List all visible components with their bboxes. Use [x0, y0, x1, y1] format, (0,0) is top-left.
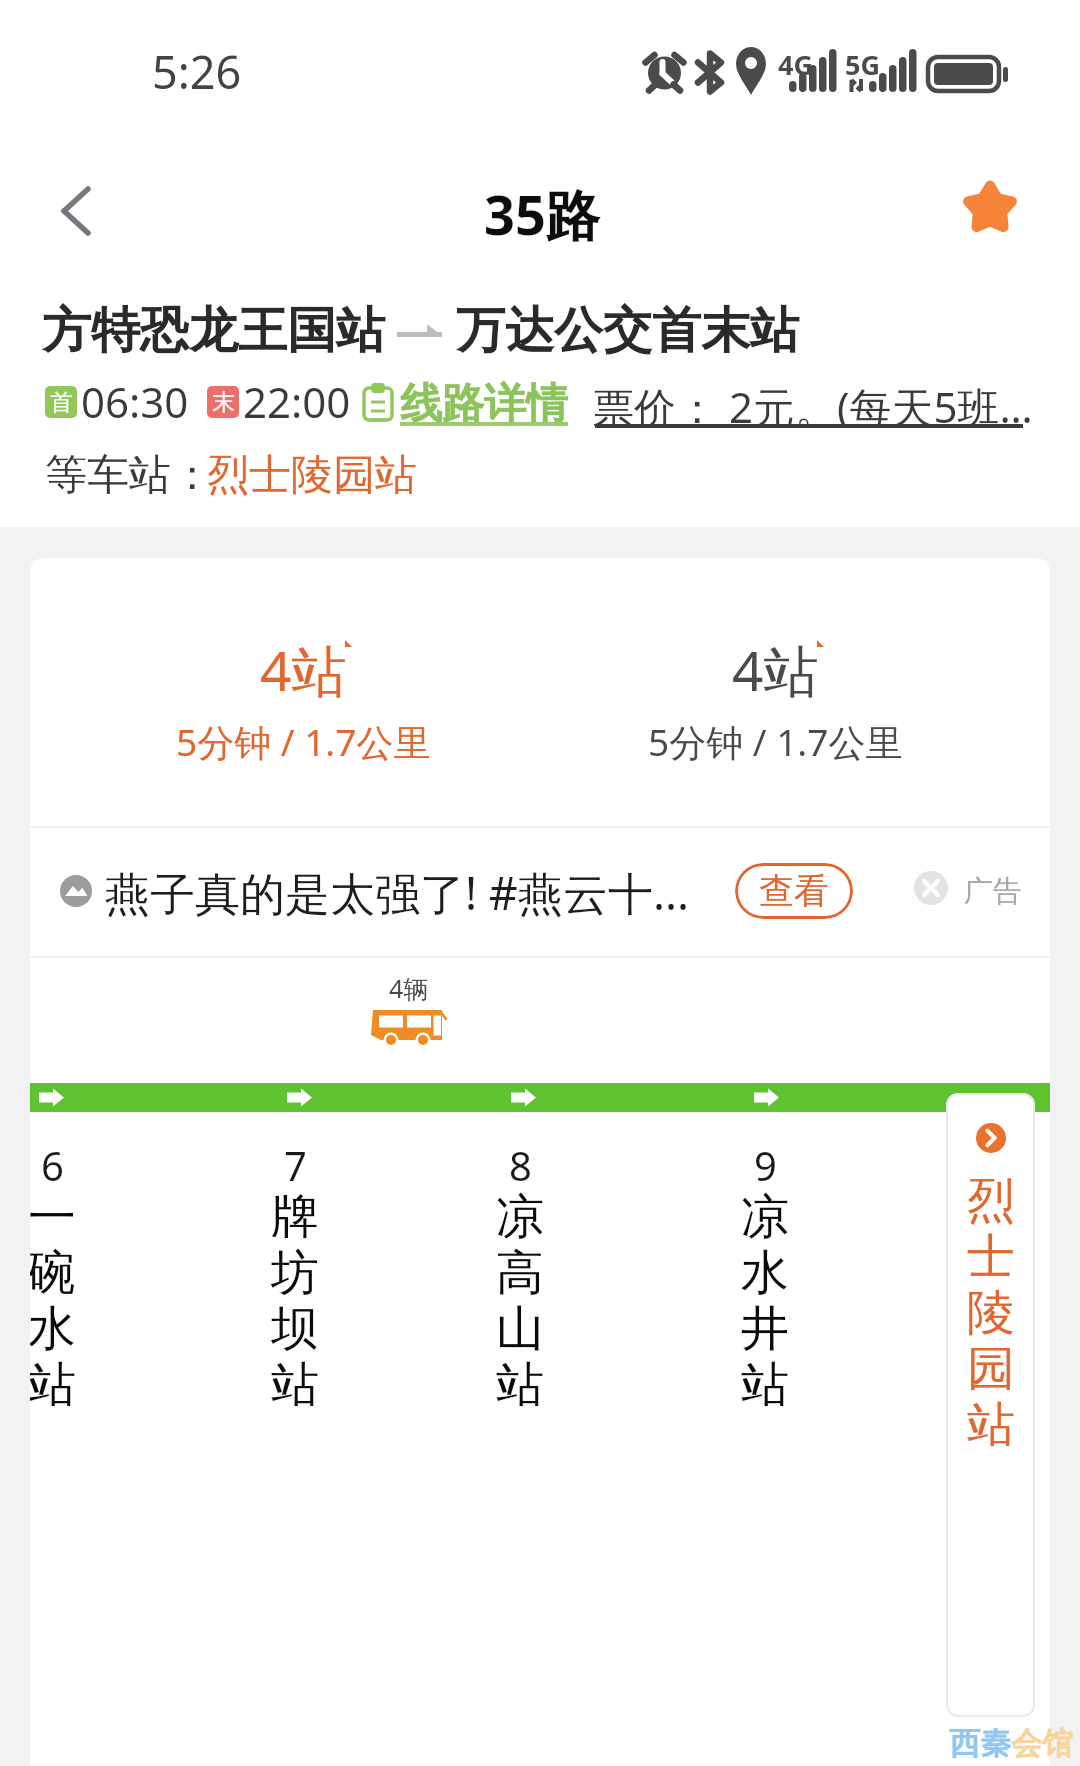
button[interactable]: Back	[36, 171, 116, 251]
staticText: 9	[754, 1138, 777, 1192]
staticText: 4辆	[389, 971, 429, 1005]
staticText: 4G	[778, 46, 813, 83]
staticText: 35路	[484, 177, 600, 251]
staticText: 方特恐龙王国站	[42, 300, 385, 362]
staticText: 燕子真的是太强了! #燕云十...	[105, 862, 690, 923]
staticText: 线路详情	[400, 378, 568, 426]
staticText: 5分钟 / 1.7公里	[648, 716, 903, 767]
staticText: 8	[509, 1138, 532, 1192]
button[interactable]: 7	[240, 1138, 350, 1558]
staticText: 5分钟 / 1.7公里	[176, 716, 431, 767]
staticText: 票价： 2元。(每天5班…	[592, 378, 1033, 426]
button[interactable]: 烈士陵园站	[946, 1093, 1035, 1717]
staticText: 4站	[732, 632, 819, 707]
button[interactable]: 4站	[123, 632, 483, 812]
staticText: 烈士陵园站	[207, 449, 417, 502]
staticText: 5:26	[152, 41, 242, 102]
button[interactable]: 线路详情	[362, 378, 568, 426]
staticText: 一碗水站	[30, 1187, 79, 1415]
staticText: 西秦	[949, 1724, 1011, 1763]
button[interactable]: 8	[465, 1138, 575, 1558]
staticText: 首	[50, 388, 73, 417]
button[interactable]: 6	[30, 1138, 107, 1558]
staticText: 烈士陵园站	[964, 1171, 1018, 1455]
staticText: 22:00	[243, 373, 351, 421]
staticText: 牌坊坝站	[268, 1187, 322, 1415]
button[interactable]: Favorite	[950, 167, 1030, 247]
staticText: 7	[284, 1138, 307, 1192]
staticText: 5G	[845, 46, 880, 83]
staticText: 广告	[964, 873, 1022, 910]
staticText: 凉高山站	[493, 1187, 547, 1415]
staticText: 6	[41, 1138, 64, 1192]
button[interactable]: 4站	[595, 632, 955, 812]
button[interactable]: Close ad	[914, 871, 948, 905]
staticText: 4站	[260, 632, 347, 707]
staticText: 万达公交首末站	[456, 300, 799, 362]
staticText: 06:30	[81, 373, 189, 421]
staticText: 等车站：	[45, 449, 213, 502]
button[interactable]: 查看	[735, 863, 853, 919]
staticText: 末	[212, 388, 235, 417]
staticText: 查看	[759, 869, 829, 913]
staticText: 会馆	[1011, 1724, 1073, 1763]
button[interactable]: 9	[710, 1138, 820, 1558]
staticText: 凉水井站	[738, 1187, 792, 1415]
